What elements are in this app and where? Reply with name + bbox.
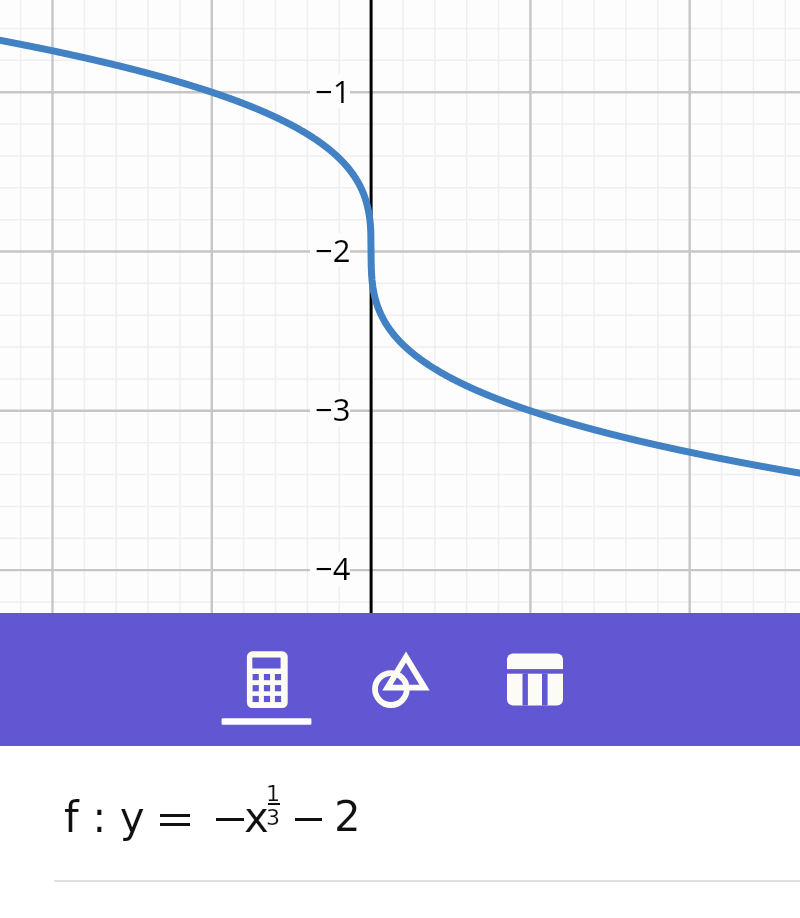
- staticText: f : y: [64, 793, 145, 842]
- staticText: −1: [315, 70, 351, 112]
- staticText: −4: [315, 547, 351, 589]
- staticText: −2: [315, 229, 351, 271]
- button[interactable]: Calculator: [212, 613, 322, 746]
- button[interactable]: Table: [480, 613, 590, 746]
- button[interactable]: Geometry: [346, 613, 456, 746]
- staticText: −3: [315, 388, 351, 430]
- staticText: 3: [266, 805, 280, 831]
- staticText: x: [244, 793, 269, 842]
- button[interactable]: Edit function f : y = -x^(1/3) - 2: [0, 746, 800, 918]
- staticText: 1: [266, 781, 280, 807]
- staticText: 2: [334, 792, 361, 841]
